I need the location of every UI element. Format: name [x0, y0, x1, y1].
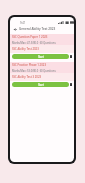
button[interactable]: Back	[12, 26, 18, 32]
staticText: SSC Practice Phase 1 2023	[12, 63, 47, 67]
staticText: 9:41	[20, 21, 26, 25]
staticText: Marks/Max: 53.0/80.0 60 Questions	[12, 69, 56, 73]
button[interactable]: More options	[70, 83, 72, 86]
staticText: Start	[38, 55, 44, 59]
staticText: General Ability Test 2023	[19, 27, 56, 31]
staticText: Marks/Max: 47.5/80.0 60 Questions	[12, 41, 56, 45]
staticText: SSC Ability Test 3 2023	[12, 75, 42, 79]
staticText: SSC Question Paper 1 2023	[12, 35, 48, 39]
button[interactable]: More options	[70, 55, 72, 58]
button[interactable]: SSC Question Paper 1 2023	[10, 34, 74, 59]
button[interactable]: Start	[12, 82, 69, 87]
button[interactable]: SSC Practice Phase 1 2023	[10, 62, 74, 87]
staticText: SSC Ability Test 2023	[12, 47, 39, 51]
button[interactable]: Start	[12, 54, 69, 59]
staticText: Start	[38, 83, 44, 87]
